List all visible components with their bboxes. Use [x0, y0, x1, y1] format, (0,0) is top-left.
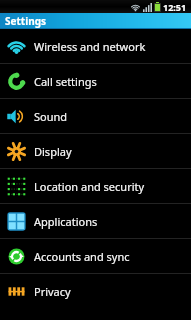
button[interactable]: Accounts and sync — [0, 239, 191, 273]
button[interactable]: Privacy — [0, 274, 191, 308]
button[interactable]: Location and security — [0, 169, 191, 203]
staticText: Privacy — [34, 284, 71, 299]
button[interactable]: Display — [0, 134, 191, 168]
button[interactable]: Sound — [0, 99, 191, 133]
staticText: Applications — [34, 214, 98, 229]
staticText: Wireless and network — [34, 39, 146, 54]
staticText: 12:51 — [163, 1, 187, 13]
button[interactable]: Applications — [0, 204, 191, 238]
button[interactable]: Call settings — [0, 64, 191, 98]
staticText: Call settings — [34, 74, 97, 89]
staticText: Settings — [5, 14, 46, 28]
staticText: Location and security — [34, 179, 145, 194]
button[interactable]: Wireless and network — [0, 29, 191, 63]
staticText: Accounts and sync — [34, 249, 130, 264]
staticText: Display — [34, 144, 72, 159]
staticText: Sound — [34, 109, 68, 124]
